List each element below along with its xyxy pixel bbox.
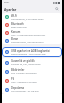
button[interactable]: Bildirimler — [2, 67, 62, 76]
staticText: %34 kullanildi - 64 GB bos — [11, 90, 39, 93]
staticText: Depolama — [11, 86, 25, 90]
staticText: Son 7 gunde 48 bildirim — [11, 72, 37, 75]
staticText: Wi-Fi — [11, 14, 18, 18]
staticText: TurkTelekom_2.4G agina bagli — [11, 18, 44, 21]
button[interactable]: Guvenlik ve gizlilik — [2, 58, 62, 67]
staticText: Bluetooth — [11, 22, 24, 26]
button[interactable]: USB ayarlari ve AOB baglantisi — [2, 47, 62, 57]
button[interactable]: Search — [54, 6, 60, 12]
staticText: Parmak izi, PIN, ekran kilidi — [11, 63, 41, 66]
button[interactable]: Konum — [2, 29, 62, 37]
staticText: Bagli cihaz yok — [11, 26, 27, 29]
button[interactable]: Wi-Fi — [2, 13, 62, 21]
staticText: Bildirimler — [11, 68, 25, 72]
staticText: Karanlik tema, Yazi tipi boyutu — [11, 41, 44, 44]
staticText: Konum — [11, 30, 21, 34]
button[interactable]: Pil — [2, 76, 62, 85]
button[interactable]: Depolama — [2, 85, 62, 94]
staticText: Acik - 3 uygulamanin erisimi var — [11, 34, 46, 37]
staticText: USB ayarlari ve AOB baglantisi — [11, 49, 50, 53]
button[interactable]: Bluetooth — [2, 21, 62, 29]
button[interactable]: Ekran — [2, 37, 62, 44]
staticText: Guvenlik ve gizlilik — [11, 59, 35, 63]
staticText: Pil — [11, 77, 15, 81]
staticText: Dosya aktarimi - MTP modu acik — [11, 53, 46, 56]
staticText: Ayarlar — [4, 7, 17, 12]
staticText: %82 - yaklasik 6 sa kaldi — [11, 81, 37, 84]
staticText: 09:41 — [4, 1, 10, 4]
staticText: Ekran — [11, 37, 19, 41]
